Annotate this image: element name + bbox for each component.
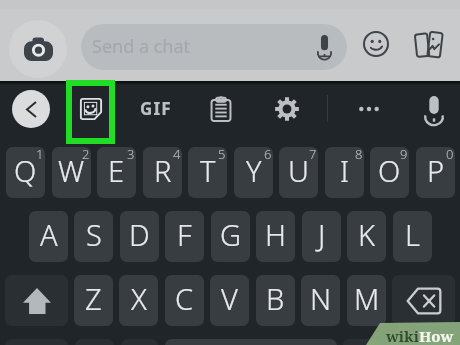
staticText: wiki	[386, 326, 419, 345]
staticText: 6	[264, 147, 272, 163]
staticText: 1	[36, 147, 44, 163]
staticText: N	[310, 279, 332, 318]
staticText: J	[318, 215, 326, 254]
staticText: K	[358, 215, 376, 254]
button[interactable]: I	[325, 147, 364, 198]
staticText: 9	[400, 147, 408, 163]
staticText: V	[221, 279, 238, 318]
button[interactable]: More options	[350, 90, 388, 128]
staticText: F	[177, 215, 192, 254]
staticText: How	[419, 326, 454, 345]
button[interactable]: Camera	[9, 20, 67, 78]
staticText: T	[200, 151, 216, 190]
staticText: Q	[14, 151, 37, 190]
button[interactable]: Z	[74, 275, 113, 326]
button[interactable]: Voice input	[415, 90, 453, 128]
button[interactable]: W	[52, 147, 91, 198]
staticText: Send a chat	[92, 34, 191, 59]
button[interactable]: T	[188, 147, 227, 198]
staticText: G	[220, 215, 241, 254]
button[interactable]: R	[143, 147, 182, 198]
staticText: L	[405, 215, 420, 254]
button[interactable]: E	[97, 147, 136, 198]
button[interactable]: F	[165, 211, 204, 262]
button[interactable]: Settings	[268, 90, 306, 128]
staticText: M	[354, 279, 380, 318]
button[interactable]: G	[211, 211, 250, 262]
staticText: 2	[82, 147, 90, 163]
staticText: X	[131, 279, 147, 318]
staticText: B	[266, 279, 285, 318]
staticText: W	[58, 151, 85, 190]
staticText: 0	[446, 147, 454, 163]
staticText: D	[129, 215, 150, 254]
button[interactable]: Stickers	[410, 25, 448, 63]
button[interactable]: K	[347, 211, 386, 262]
staticText: H	[265, 215, 286, 254]
button[interactable]: Send a chat	[81, 24, 347, 70]
staticText: S	[86, 215, 102, 254]
button[interactable]: A	[29, 211, 68, 262]
button[interactable]: O	[370, 147, 409, 198]
button[interactable]: Q	[6, 147, 45, 198]
staticText: E	[108, 151, 125, 190]
staticText: R	[154, 151, 172, 190]
button[interactable]: Stickers	[73, 91, 109, 127]
button[interactable]: Backspace	[392, 275, 455, 326]
button[interactable]: Clipboard	[202, 90, 240, 128]
staticText: I	[340, 151, 350, 190]
staticText: U	[288, 151, 309, 190]
staticText: 3	[127, 147, 135, 163]
button[interactable]: Emoji	[358, 26, 394, 62]
button[interactable]: X	[119, 275, 158, 326]
button[interactable]: M	[347, 275, 386, 326]
staticText: O	[378, 151, 401, 190]
button[interactable]: B	[256, 275, 295, 326]
staticText: P	[427, 151, 445, 190]
button[interactable]	[343, 339, 381, 345]
button[interactable]	[388, 339, 455, 345]
button[interactable]: GIF	[135, 88, 177, 128]
staticText: 4	[173, 147, 181, 163]
button[interactable]: J	[302, 211, 341, 262]
staticText: C	[175, 279, 194, 318]
button[interactable]: P	[416, 147, 455, 198]
button[interactable]: U	[279, 147, 318, 198]
button[interactable]	[165, 339, 337, 345]
button[interactable]: Voice note	[308, 30, 340, 62]
staticText: Y	[246, 151, 262, 190]
button[interactable]: Y	[234, 147, 273, 198]
button[interactable]: D	[120, 211, 159, 262]
button[interactable]: L	[393, 211, 432, 262]
button[interactable]: Shift	[5, 275, 68, 326]
staticText: 5	[218, 147, 226, 163]
button[interactable]: C	[165, 275, 204, 326]
staticText: 7	[309, 147, 317, 163]
button[interactable]: Sticker button highlight	[66, 80, 115, 144]
button[interactable]: Back	[12, 90, 50, 128]
staticText: A	[40, 215, 58, 254]
button[interactable]: N	[301, 275, 340, 326]
staticText: 8	[355, 147, 363, 163]
button[interactable]: S	[74, 211, 113, 262]
button[interactable]: H	[256, 211, 295, 262]
staticText: GIF	[140, 97, 172, 120]
staticText: Z	[85, 279, 102, 318]
button[interactable]: V	[210, 275, 249, 326]
